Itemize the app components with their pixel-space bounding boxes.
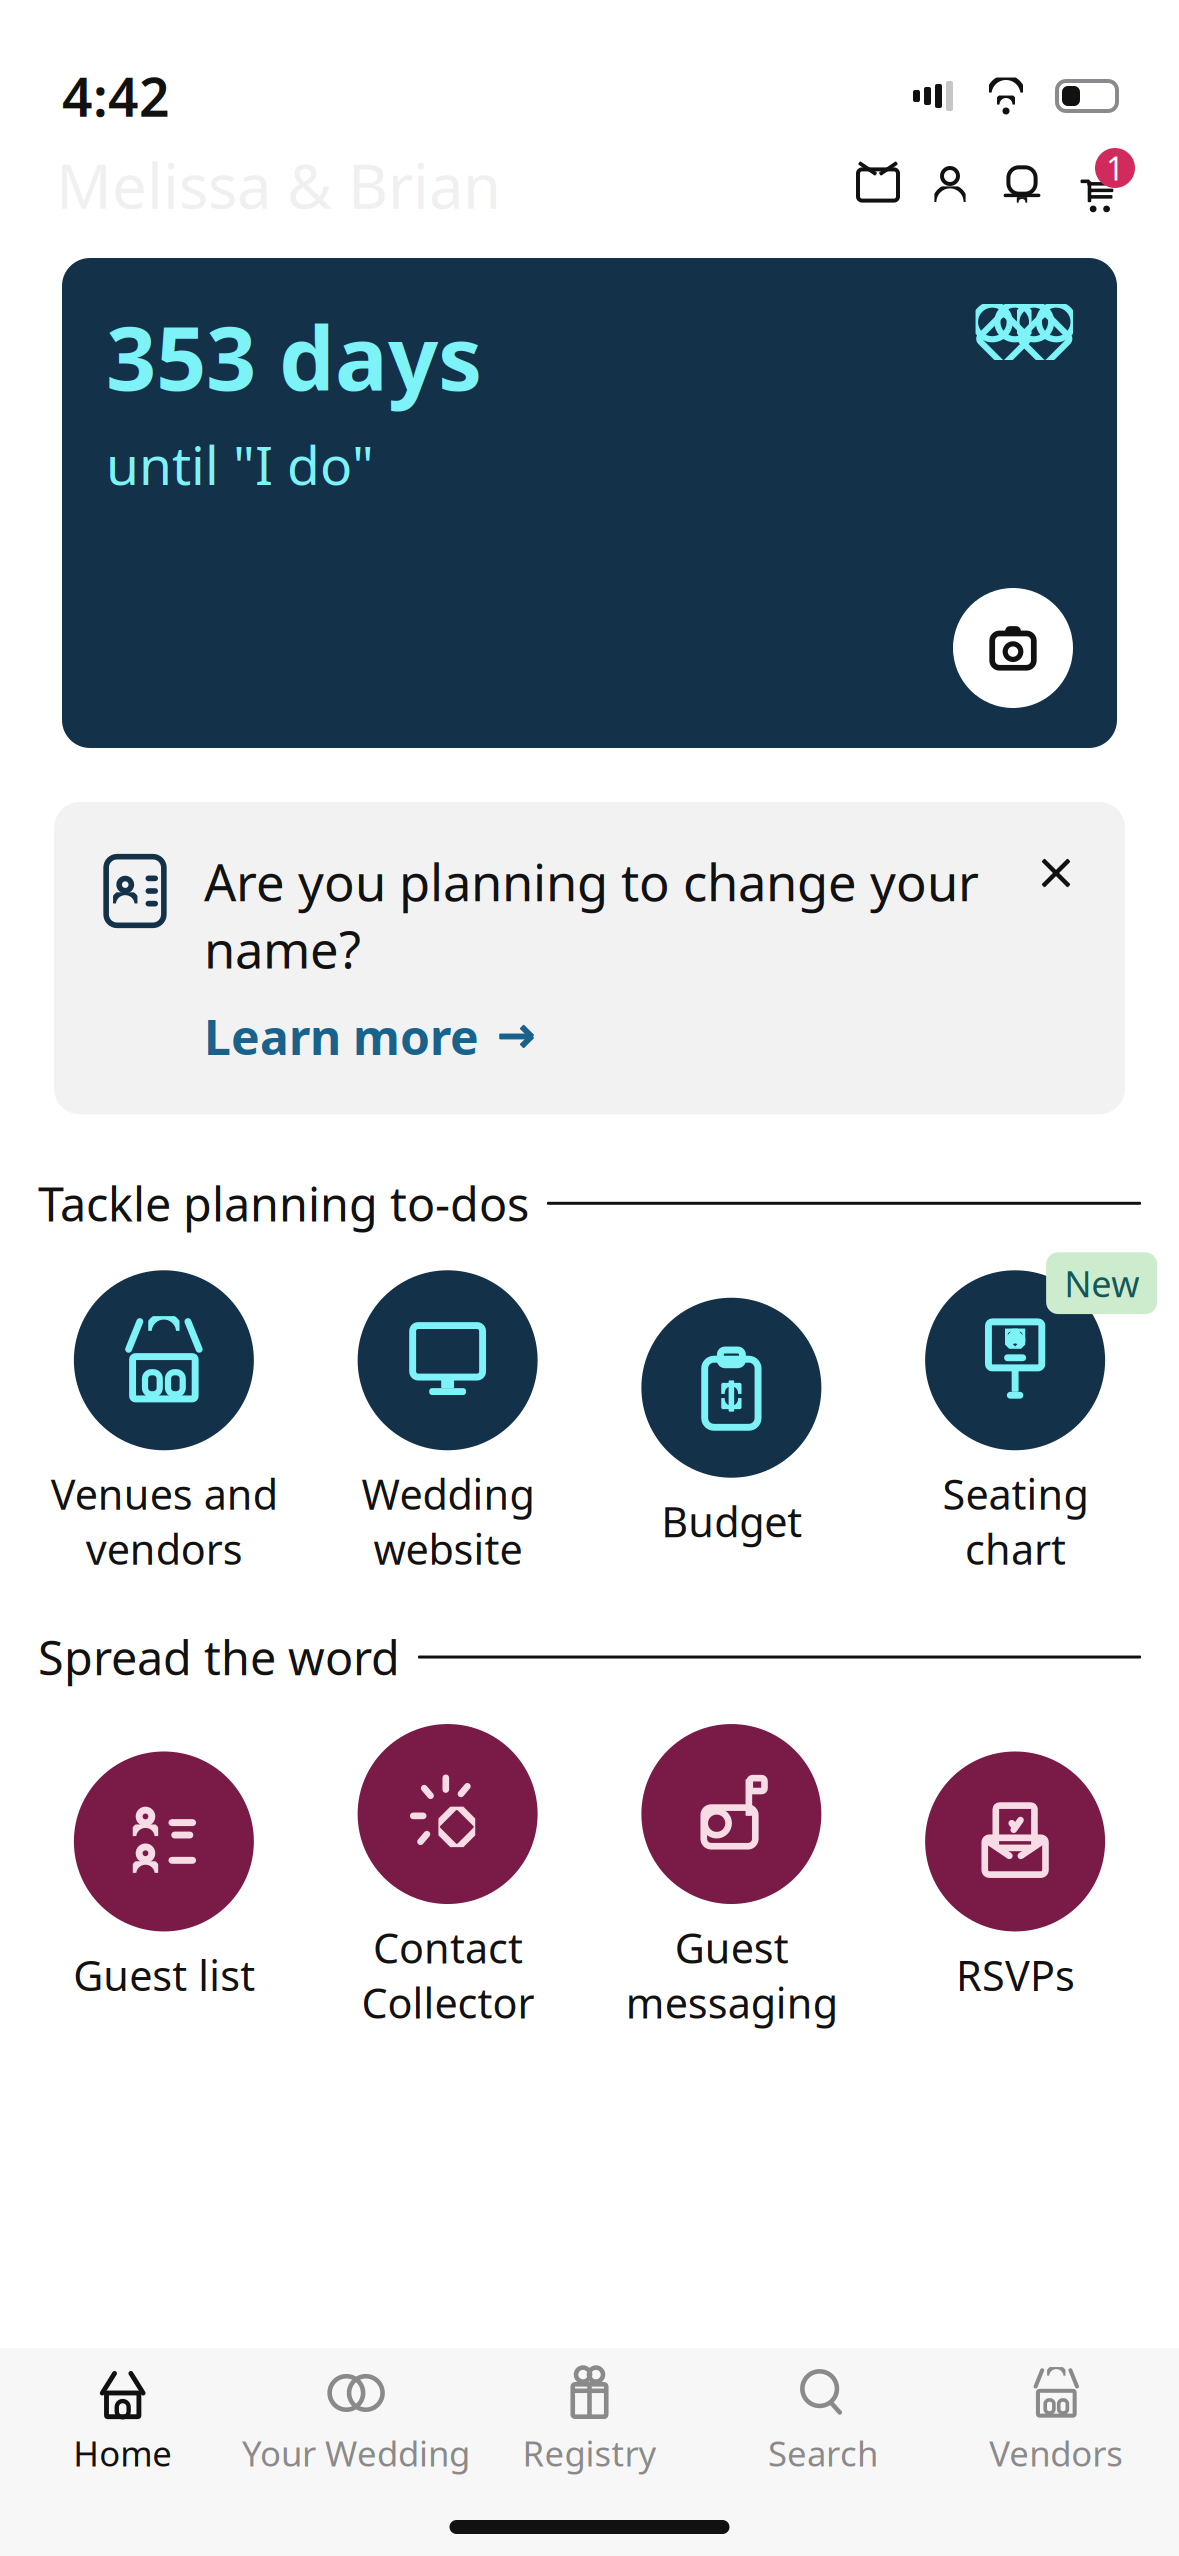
staticText: Registry — [522, 2430, 656, 2476]
staticText: Learn more — [204, 1005, 479, 1068]
button[interactable]: Venues and vendors — [22, 1270, 306, 1576]
button[interactable]: Home — [6, 2348, 239, 2486]
button[interactable]: Account — [921, 156, 979, 214]
staticText: 353 days — [106, 298, 482, 415]
staticText: Vendors — [989, 2430, 1123, 2476]
button[interactable]: Dismiss — [1021, 838, 1091, 908]
staticText: Home — [73, 2430, 172, 2476]
button[interactable]: Vendors — [940, 2348, 1173, 2486]
staticText: RSVPs — [956, 1947, 1075, 2002]
staticText: Seating chart — [942, 1466, 1088, 1576]
button[interactable]: Contact Collector — [306, 1724, 590, 2030]
staticText: Contact Collector — [361, 1920, 534, 2030]
staticText: Are you planning to change your name? — [204, 848, 979, 983]
staticText: Melissa & Brian — [56, 144, 501, 226]
button[interactable]: Messages — [849, 156, 907, 214]
staticText: Your Wedding — [242, 2430, 470, 2476]
staticText: Guest list — [73, 1947, 255, 2002]
staticText: 1 — [1106, 147, 1124, 189]
button[interactable]: Guest messaging — [589, 1724, 873, 2030]
staticText: New — [1064, 1259, 1139, 1307]
staticText: 4:42 — [62, 61, 170, 131]
button[interactable]: Guest list — [22, 1751, 306, 2002]
button[interactable]: Registry — [473, 2348, 706, 2486]
button[interactable]: Notifications — [993, 156, 1051, 214]
staticText: Guest messaging — [625, 1920, 837, 2030]
button[interactable]: Cart, 1 item — [1065, 156, 1123, 214]
button[interactable]: Budget — [589, 1298, 873, 1549]
button[interactable]: New — [873, 1270, 1157, 1576]
staticText: Venues and vendors — [50, 1466, 277, 1576]
button[interactable]: Your Wedding — [239, 2348, 473, 2486]
staticText: until "I do" — [106, 429, 374, 500]
staticText: Budget — [661, 1494, 802, 1549]
button[interactable]: 353 days until I do — [0, 240, 1179, 748]
staticText: Wedding website — [361, 1466, 534, 1576]
button[interactable]: Wedding website — [306, 1270, 590, 1576]
staticText: Spread the word — [38, 1626, 400, 1688]
button[interactable]: RSVPs — [873, 1751, 1157, 2002]
button[interactable]: Learn more — [204, 1005, 537, 1068]
staticText: Search — [768, 2430, 878, 2476]
staticText: Tackle planning to-dos — [38, 1172, 529, 1234]
button[interactable]: Search — [706, 2348, 940, 2486]
